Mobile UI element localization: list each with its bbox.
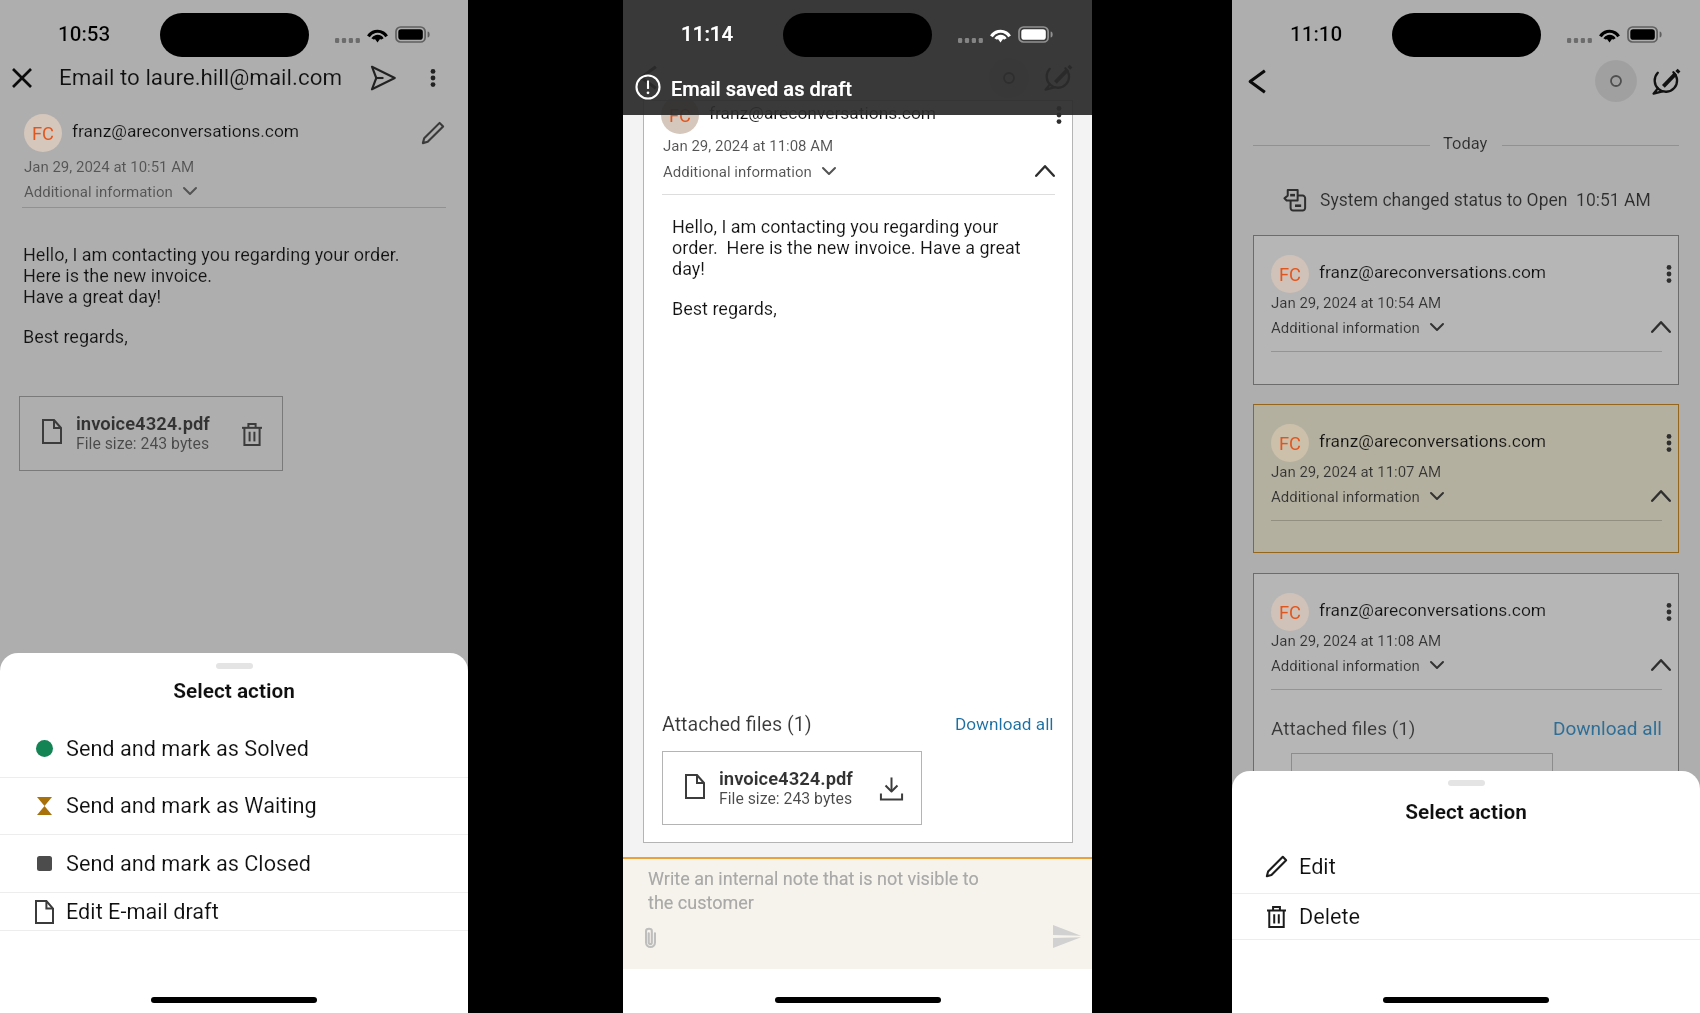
staticText: Additional information [1271, 319, 1420, 337]
button[interactable]: Additional information [24, 182, 197, 200]
staticText: Write an internal note that is not visib… [648, 868, 1008, 913]
staticText: franz@areconversations.com [1319, 600, 1547, 620]
staticText: Hello, I am contacting you regarding you… [23, 244, 400, 265]
staticText: 11:10 [1290, 22, 1343, 46]
staticText: invoice4324.pdf [76, 413, 210, 435]
staticText: File size: 243 bytes [76, 434, 210, 453]
staticText: 11:14 [681, 22, 734, 46]
button[interactable]: Additional information [663, 162, 836, 180]
staticText: Send and mark as Waiting [66, 793, 317, 818]
staticText: Send and mark as Closed [66, 851, 311, 876]
button[interactable]: Send [368, 63, 397, 92]
button[interactable]: Send and mark as Waiting [0, 777, 468, 834]
staticText: File size: 243 bytes [719, 789, 853, 808]
button[interactable]: Collapse [1648, 652, 1674, 678]
staticText: Send and mark as Solved [66, 736, 309, 761]
button[interactable]: More options [1657, 431, 1681, 455]
button[interactable]: Collapse [1648, 483, 1674, 509]
button[interactable]: More options [1657, 600, 1681, 624]
button[interactable]: FC [1253, 235, 1679, 385]
button[interactable]: Download all [955, 711, 1054, 731]
staticText: Jan 29, 2024 at 11:07 AM [1271, 463, 1442, 481]
staticText: Hello, I am contacting you regarding you… [672, 216, 1034, 279]
button[interactable]: Download [877, 774, 905, 802]
staticText: 10:53 [58, 22, 111, 46]
staticText: Edit [1299, 854, 1336, 879]
button[interactable]: Back [1242, 66, 1272, 96]
button[interactable]: FC [1253, 404, 1679, 553]
button[interactable]: Collapse [1030, 156, 1060, 186]
staticText: Select action [0, 679, 468, 703]
staticText: Attached files (1) [662, 713, 812, 736]
staticText: FC [32, 123, 55, 144]
staticText: Additional information [663, 163, 812, 181]
button[interactable]: Download all [1553, 715, 1662, 737]
button[interactable]: New conversation [1043, 60, 1075, 92]
staticText: franz@areconversations.com [1319, 262, 1547, 282]
staticText: FC [669, 105, 692, 126]
staticText: Have a great day! [23, 286, 162, 307]
staticText: Download all [955, 714, 1054, 734]
staticText: Additional information [24, 183, 173, 201]
staticText: Jan 29, 2024 at 11:08 AM [663, 137, 834, 155]
button[interactable]: Edit E-mail draft [0, 892, 468, 930]
staticText: Jan 29, 2024 at 10:54 AM [1271, 294, 1442, 312]
staticText: Jan 29, 2024 at 11:08 AM [1271, 632, 1442, 650]
button[interactable]: New conversation [1651, 64, 1683, 96]
staticText: Download all [1553, 717, 1662, 739]
button[interactable]: invoice4324.pdf [19, 396, 283, 471]
button[interactable]: Collapse [1648, 314, 1674, 340]
staticText: Jan 29, 2024 at 10:51 AM [24, 158, 195, 176]
staticText: Attached files (1) [1271, 717, 1416, 739]
button[interactable]: Edit [1232, 839, 1700, 893]
staticText: Edit E-mail draft [66, 899, 219, 924]
button[interactable]: More options [418, 63, 447, 92]
button[interactable]: Attach file [637, 922, 663, 952]
button[interactable]: Send and mark as Solved [0, 720, 468, 777]
button[interactable]: Additional information [1271, 487, 1444, 505]
staticText: Additional information [1271, 657, 1420, 675]
button[interactable]: Send note [1050, 921, 1084, 951]
button[interactable]: invoice4324.pdf [662, 751, 922, 825]
staticText: Best regards, [672, 298, 777, 319]
staticText: System changed status to Open 10:51 AM [1320, 190, 1651, 211]
staticText: Delete [1299, 904, 1361, 929]
button[interactable]: More options [1047, 103, 1071, 127]
staticText: Today [1443, 134, 1488, 153]
staticText: Select action [1232, 800, 1700, 824]
staticText: Additional information [1271, 488, 1420, 506]
staticText: FC [1279, 433, 1302, 454]
staticText: Best regards, [23, 326, 128, 347]
staticText: Email to laure.hill@mail.com [59, 64, 343, 90]
button[interactable]: Send and mark as Closed [0, 834, 468, 892]
staticText: franz@areconversations.com [1319, 431, 1547, 451]
staticText: Email saved as draft [671, 77, 852, 100]
button[interactable]: Additional information [1271, 318, 1444, 336]
staticText: FC [1279, 264, 1302, 285]
button[interactable]: Delete attachment [238, 420, 266, 448]
staticText: Here is the new invoice. [23, 265, 213, 286]
staticText: franz@areconversations.com [709, 103, 937, 123]
button[interactable]: Delete [1232, 893, 1700, 939]
button[interactable]: Close [13, 69, 31, 87]
staticText: invoice4324.pdf [719, 768, 853, 790]
button[interactable]: Back [633, 62, 663, 92]
button[interactable]: Edit [418, 118, 448, 148]
staticText: franz@areconversations.com [72, 121, 300, 141]
button[interactable]: Additional information [1271, 656, 1444, 674]
staticText: FC [1279, 602, 1302, 623]
button[interactable]: More options [1657, 262, 1681, 286]
button[interactable]: Status [1595, 60, 1637, 102]
